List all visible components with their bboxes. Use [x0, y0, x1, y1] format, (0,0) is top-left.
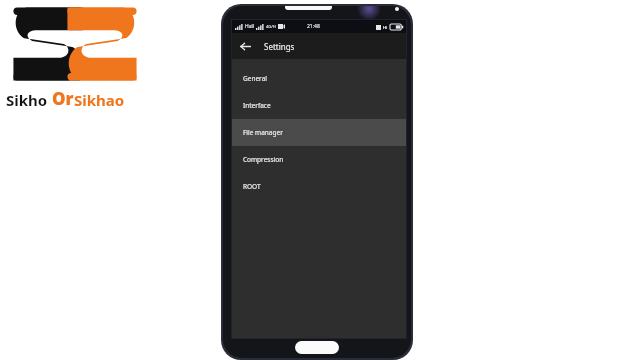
staticText: File manager — [243, 128, 283, 137]
button[interactable]: Compression — [232, 146, 406, 173]
staticText: ROOT — [243, 182, 261, 191]
staticText: 4G/H — [266, 24, 276, 29]
staticText: Sikhao — [74, 90, 125, 110]
button[interactable]: Interface — [232, 92, 406, 119]
staticText: Interface — [243, 101, 271, 110]
button[interactable]: Home — [295, 341, 339, 354]
staticText: General — [243, 74, 267, 83]
staticText: Hall — [245, 23, 255, 30]
button[interactable]: Back — [232, 33, 258, 59]
staticText: Hi — [383, 25, 388, 30]
staticText: Or — [52, 87, 74, 110]
staticText: Settings — [264, 41, 295, 52]
button[interactable]: General — [232, 65, 406, 92]
staticText: Compression — [243, 155, 284, 164]
button[interactable]: ROOT — [232, 173, 406, 200]
staticText: 21:48 — [307, 23, 320, 30]
button[interactable]: File manager — [232, 119, 406, 146]
staticText: Sikho — [6, 90, 48, 110]
